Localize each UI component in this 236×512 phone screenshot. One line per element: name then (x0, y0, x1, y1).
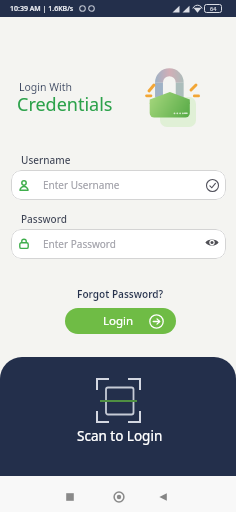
button[interactable]: Enter Username (11, 170, 226, 200)
staticText: Password (21, 212, 67, 226)
staticText: Username (21, 153, 71, 167)
staticText: Login (103, 313, 134, 329)
staticText: Enter Password (43, 237, 116, 251)
button[interactable]: Forgot Password? (77, 287, 164, 301)
staticText: Login With (19, 80, 72, 94)
button[interactable] (63, 490, 77, 504)
button[interactable]: Login (65, 308, 176, 334)
button[interactable] (156, 490, 170, 504)
staticText: Credentials (17, 92, 113, 117)
staticText: Scan to Login (77, 427, 163, 445)
staticText: 64 (210, 5, 217, 12)
button[interactable]: Enter Password (11, 229, 226, 259)
button[interactable] (112, 490, 126, 504)
staticText: Enter Username (43, 178, 120, 192)
staticText: 10:39 AM | 1.6KB/s (10, 4, 74, 14)
button[interactable]: Scan to Login (0, 357, 236, 477)
